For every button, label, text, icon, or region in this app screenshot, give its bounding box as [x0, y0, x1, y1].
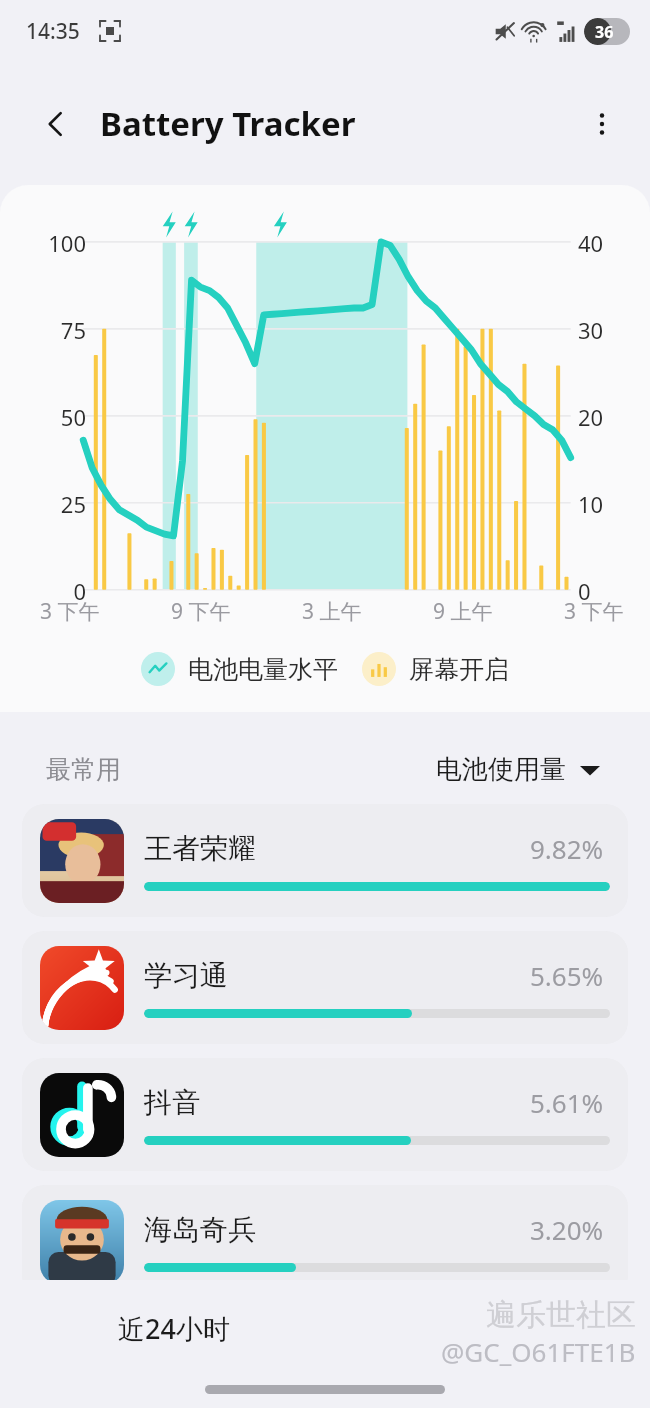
button[interactable]: 海岛奇兵	[22, 1185, 628, 1298]
button[interactable]: 学习通	[22, 931, 628, 1044]
staticText: 遍乐世社区	[486, 1296, 636, 1334]
staticText: 3 下午	[40, 597, 100, 626]
staticText: 3.20%	[530, 1212, 604, 1247]
staticText: 50	[26, 402, 86, 432]
staticText: 20	[578, 402, 628, 432]
staticText: 40	[578, 228, 628, 258]
staticText: 抖音	[144, 1085, 200, 1120]
staticText: 75	[26, 315, 86, 345]
staticText: @GC_O61FTE1B	[441, 1334, 636, 1369]
staticText: 王者荣耀	[144, 831, 256, 866]
staticText: 10	[578, 489, 628, 519]
button[interactable]: 电池使用量	[432, 749, 604, 790]
staticText: 0	[26, 576, 86, 606]
staticText: 30	[578, 315, 628, 345]
button[interactable]: 王者荣耀	[22, 804, 628, 917]
staticText: 25	[26, 489, 86, 519]
button[interactable]: Back	[34, 102, 78, 146]
staticText: 5.65%	[530, 958, 604, 993]
staticText: 电池电量水平	[188, 654, 338, 685]
staticText: 0	[578, 576, 628, 606]
staticText: 9.82%	[530, 831, 604, 866]
staticText: 屏幕开启	[409, 654, 509, 685]
staticText: 3 上午	[302, 597, 362, 626]
button[interactable]: More options	[580, 102, 624, 146]
staticText: 最常用	[46, 754, 121, 785]
staticText: 100	[26, 228, 86, 258]
staticText: 9 下午	[171, 597, 231, 626]
staticText: 电池使用量	[436, 753, 566, 786]
staticText: 学习通	[144, 958, 228, 993]
staticText: 海岛奇兵	[144, 1212, 256, 1247]
staticText: Battery Tracker	[100, 101, 356, 146]
staticText: 5.61%	[530, 1085, 604, 1120]
staticText: 9 上午	[433, 597, 493, 626]
staticText: 近24小时	[118, 1310, 230, 1347]
staticText: 36	[595, 21, 614, 43]
staticText: 3 下午	[564, 597, 624, 626]
button[interactable]: 抖音	[22, 1058, 628, 1171]
staticText: 14:35	[26, 17, 80, 46]
